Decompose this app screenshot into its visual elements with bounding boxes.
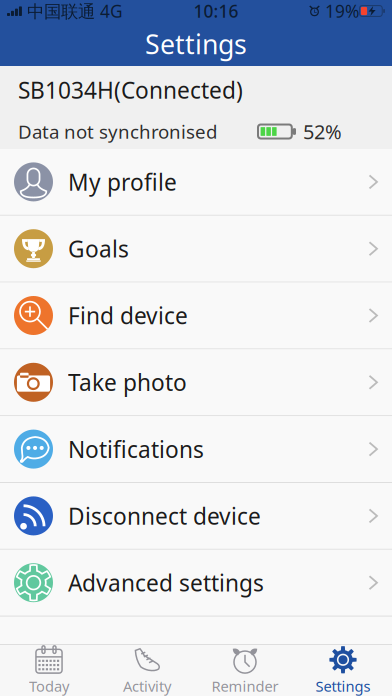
staticText: Disconnect device [68,501,261,531]
staticText: Notifications [68,434,204,464]
staticText: Today [29,676,69,696]
button[interactable]: Goals [0,216,392,283]
staticText: 10:16 [193,0,238,22]
button[interactable]: Notifications [0,416,392,483]
staticText: Settings [315,676,370,696]
staticText: My profile [68,167,177,197]
button[interactable]: Today [0,645,98,696]
button[interactable]: Take photo [0,349,392,416]
staticText: Settings [145,26,247,62]
staticText: 中国联通 4G [22,0,123,22]
button[interactable]: Activity [98,645,196,696]
staticText: 52% [303,118,342,145]
staticText: Data not synchronised [18,119,217,144]
staticText: Take photo [68,367,187,397]
button[interactable]: My profile [0,149,392,216]
button[interactable]: Reminder [196,645,294,696]
staticText: Reminder [211,676,278,696]
button[interactable]: Settings [294,645,392,696]
staticText: Goals [68,234,129,264]
staticText: Find device [68,300,188,330]
button[interactable]: Find device [0,283,392,349]
button[interactable]: Disconnect device [0,483,392,550]
staticText: 19% [320,0,359,22]
button[interactable]: Advanced settings [0,550,392,617]
staticText: Advanced settings [68,568,264,598]
staticText: SB1034H(Connected) [18,75,243,105]
staticText: Activity [123,676,171,696]
